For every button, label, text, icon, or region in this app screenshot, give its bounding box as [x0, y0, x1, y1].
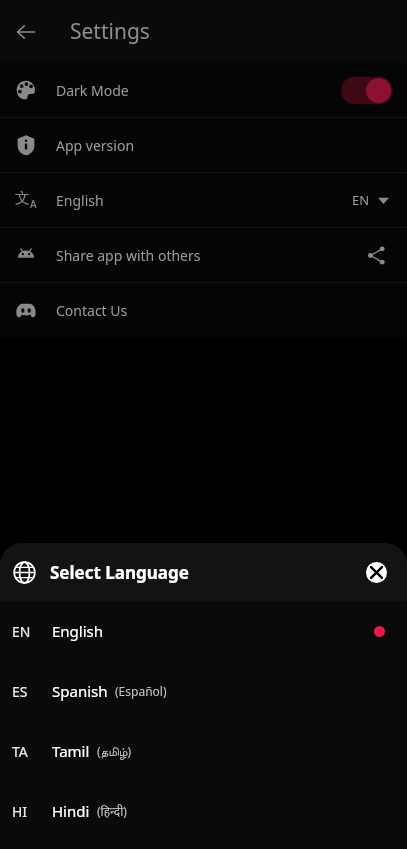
staticText: English	[52, 621, 104, 641]
staticText: Tamil	[52, 741, 90, 761]
staticText: English	[56, 191, 104, 210]
staticText: Dark Mode	[56, 81, 129, 100]
button[interactable]: Dark Mode toggle	[341, 75, 393, 106]
button[interactable]: Share app with others	[0, 228, 407, 282]
staticText: Contact Us	[56, 301, 128, 320]
staticText: EN	[12, 622, 31, 641]
staticText: Share app with others	[56, 246, 201, 265]
staticText: A	[30, 197, 37, 211]
staticText: (Español)	[115, 683, 167, 699]
staticText: Spanish	[52, 681, 108, 701]
staticText: 文	[15, 189, 30, 208]
button[interactable]: Back	[6, 12, 46, 52]
button[interactable]: Dark Mode	[0, 63, 407, 117]
staticText: (हिन्दी)	[97, 803, 127, 819]
button[interactable]: Close	[361, 557, 391, 587]
staticText: (தமிழ்)	[97, 743, 132, 759]
staticText: Select Language	[50, 561, 189, 584]
button[interactable]: App version	[0, 118, 407, 172]
button[interactable]: HI	[0, 781, 407, 841]
staticText: ES	[12, 682, 28, 701]
button[interactable]: Share	[359, 238, 393, 272]
button[interactable]: ES	[0, 661, 407, 721]
staticText: App version	[56, 136, 135, 155]
staticText: HI	[12, 802, 28, 821]
staticText: EN	[352, 191, 370, 209]
staticText: TA	[12, 742, 28, 761]
button[interactable]: EN	[0, 601, 407, 661]
button[interactable]: 文	[0, 173, 407, 227]
staticText: Settings	[70, 17, 150, 46]
button[interactable]: TA	[0, 721, 407, 781]
button[interactable]: EN	[348, 187, 393, 213]
button[interactable]: Contact Us	[0, 283, 407, 337]
staticText: Hindi	[52, 801, 90, 821]
